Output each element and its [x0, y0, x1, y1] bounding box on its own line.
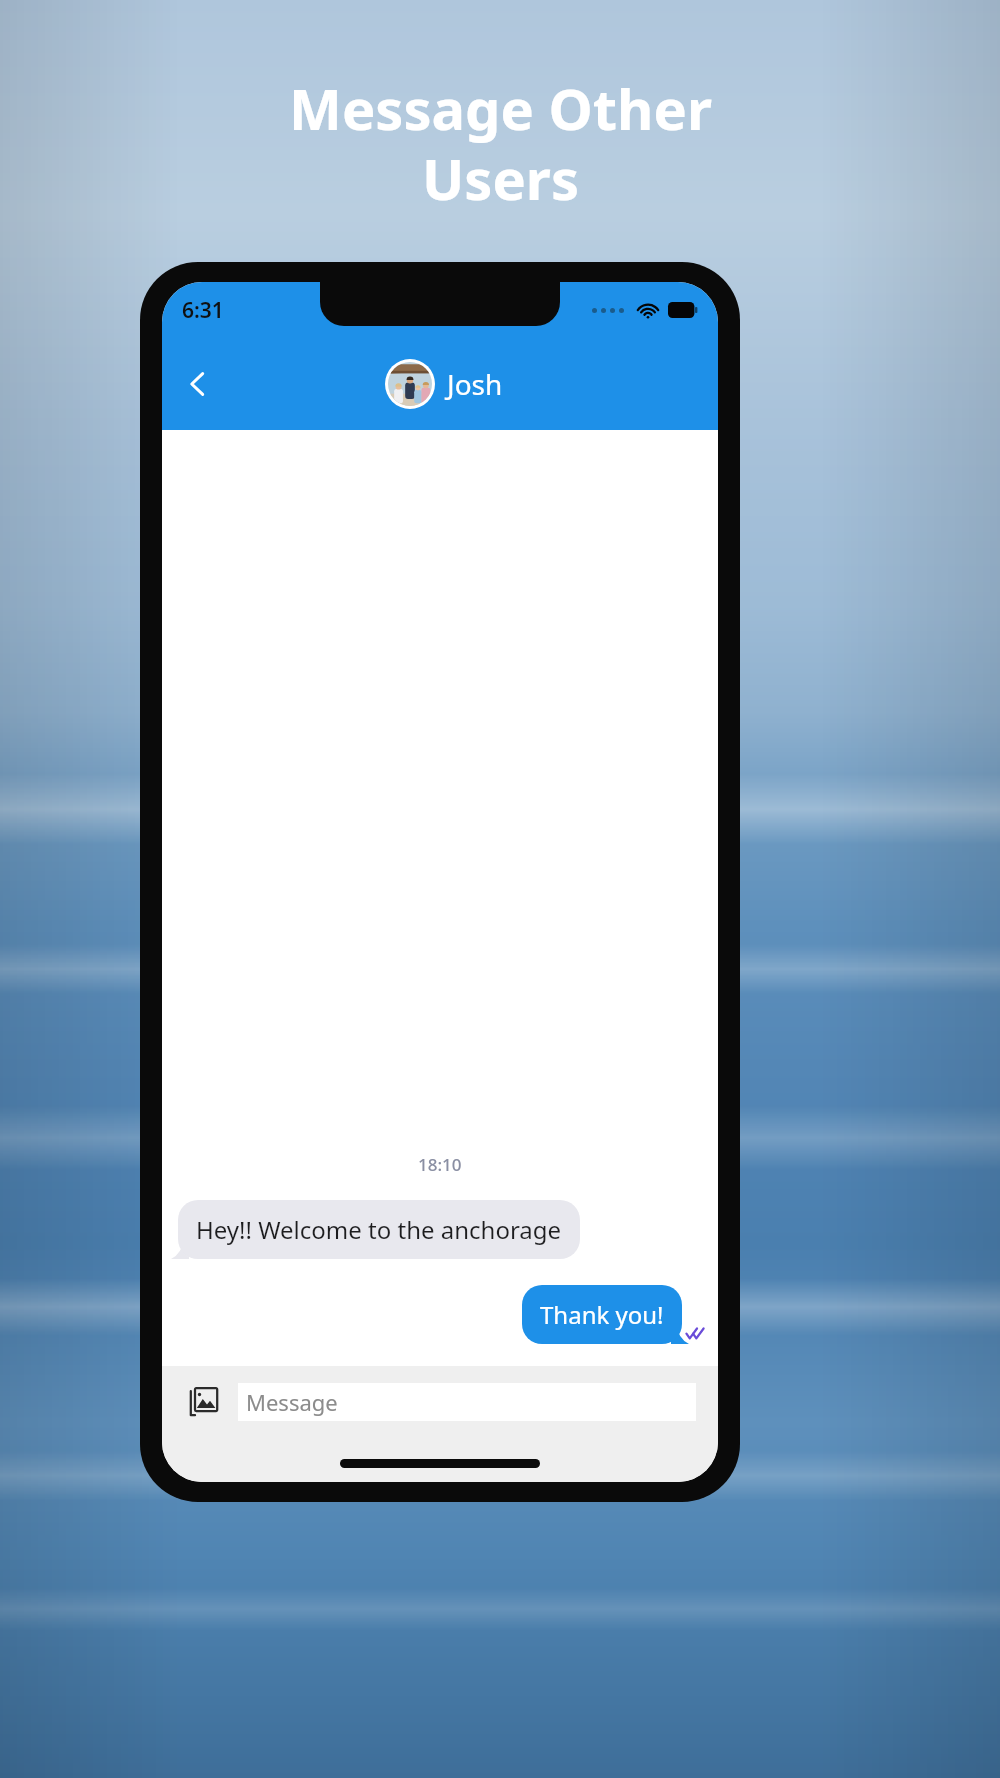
button[interactable]: Back: [170, 356, 226, 412]
staticText: 6:31: [182, 296, 224, 325]
button[interactable]: Josh: [381, 359, 507, 409]
button[interactable]: Attach photo: [180, 1378, 228, 1426]
staticText: Message Other Users: [289, 70, 712, 216]
button[interactable]: Message: [238, 1383, 696, 1421]
button[interactable]: Thank you!: [522, 1285, 682, 1344]
staticText: Hey!! Welcome to the anchorage: [196, 1213, 562, 1246]
staticText: Josh: [447, 365, 503, 403]
button[interactable]: Hey!! Welcome to the anchorage: [178, 1200, 580, 1259]
staticText: 18:10: [418, 1153, 462, 1176]
staticText: Thank you!: [540, 1298, 664, 1331]
staticText: Message: [246, 1387, 338, 1417]
